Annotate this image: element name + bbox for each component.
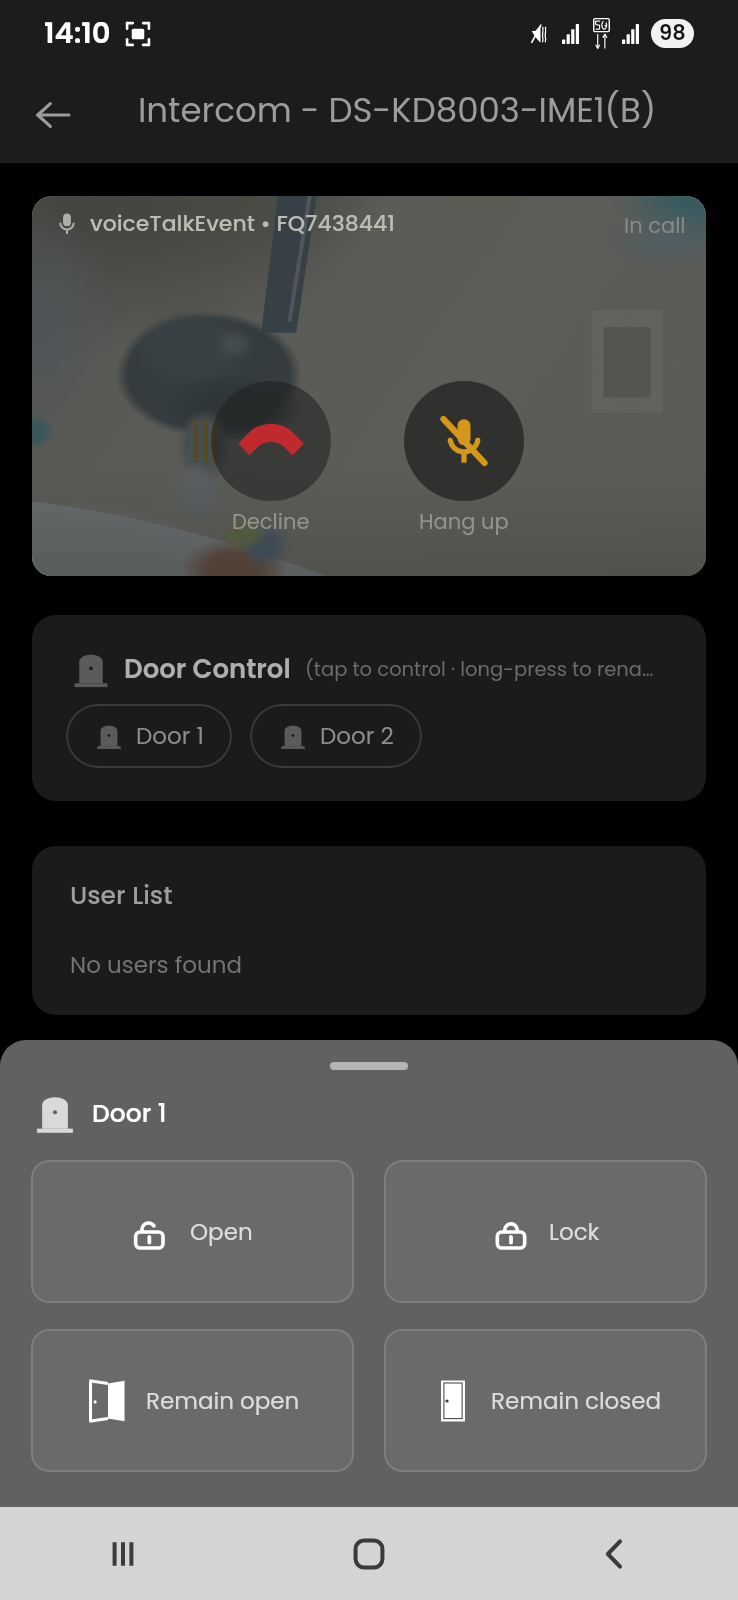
button[interactable]: Decline [211,381,331,536]
staticText: 14:10 [44,13,111,54]
staticText: voiceTalkEvent • FQ7438441 [90,208,395,239]
staticText: (tap to control · long-press to rena… [305,656,654,683]
staticText: Decline [232,507,310,536]
staticText: Remain closed [491,1385,662,1417]
button[interactable]: Open [31,1160,354,1303]
button[interactable]: Remain closed [384,1329,707,1472]
button[interactable]: Lock [384,1160,707,1303]
button[interactable]: Back [25,87,81,143]
staticText: Lock [549,1216,600,1248]
staticText: Door 1 [92,1096,167,1131]
button[interactable]: Door 1 [66,704,232,768]
staticText: Open [190,1216,253,1248]
button[interactable]: Home [246,1507,492,1600]
staticText: Door Control [124,651,291,687]
button[interactable]: Hang up [404,381,524,536]
staticText: Remain open [146,1385,300,1417]
staticText: Hang up [419,507,509,536]
button[interactable]: Door 2 [250,704,422,768]
staticText: No users found [70,949,243,981]
staticText: Door 2 [320,720,394,752]
button[interactable]: Back [492,1507,738,1600]
staticText: 98 [659,19,686,47]
staticText: Door 1 [136,720,204,752]
staticText: In call [624,211,686,240]
staticText: Intercom - DS-KD8003-IME1(B) [138,86,657,134]
button[interactable]: Recent apps [0,1507,246,1600]
staticText: User List [70,878,173,913]
button[interactable]: Remain open [31,1329,354,1472]
